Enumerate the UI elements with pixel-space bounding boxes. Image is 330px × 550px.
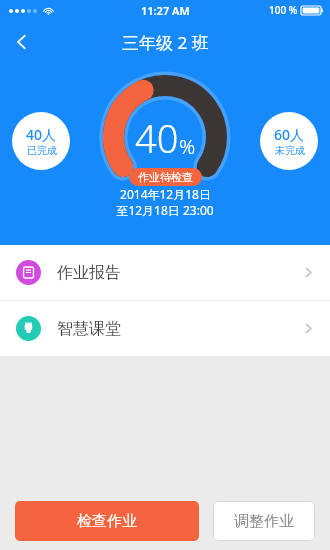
staticText: 未完成 bbox=[275, 144, 305, 157]
button[interactable]: Back bbox=[0, 20, 44, 64]
staticText: 已完成 bbox=[27, 144, 57, 157]
staticText: 至12月18日 23:00 bbox=[116, 202, 214, 218]
staticText: 100 % bbox=[269, 3, 298, 17]
staticText: 40人 bbox=[26, 125, 57, 144]
staticText: 智慧课堂 bbox=[57, 319, 121, 339]
button[interactable]: 智慧课堂 bbox=[0, 301, 330, 356]
button[interactable]: 检查作业 bbox=[15, 501, 199, 541]
staticText: 检查作业 bbox=[77, 512, 137, 531]
staticText: 11:27 AM bbox=[141, 3, 190, 18]
staticText: 调整作业 bbox=[234, 512, 294, 531]
staticText: 2014年12月18日 bbox=[120, 186, 211, 202]
button[interactable]: 调整作业 bbox=[213, 501, 315, 541]
staticText: % bbox=[179, 133, 196, 160]
staticText: 40 bbox=[135, 112, 179, 164]
staticText: 三年级 2 班 bbox=[122, 31, 209, 54]
staticText: 60人 bbox=[274, 125, 305, 144]
staticText: 作业待检查 bbox=[138, 170, 193, 184]
button[interactable]: 作业报告 bbox=[0, 245, 330, 300]
staticText: 作业报告 bbox=[57, 263, 121, 283]
